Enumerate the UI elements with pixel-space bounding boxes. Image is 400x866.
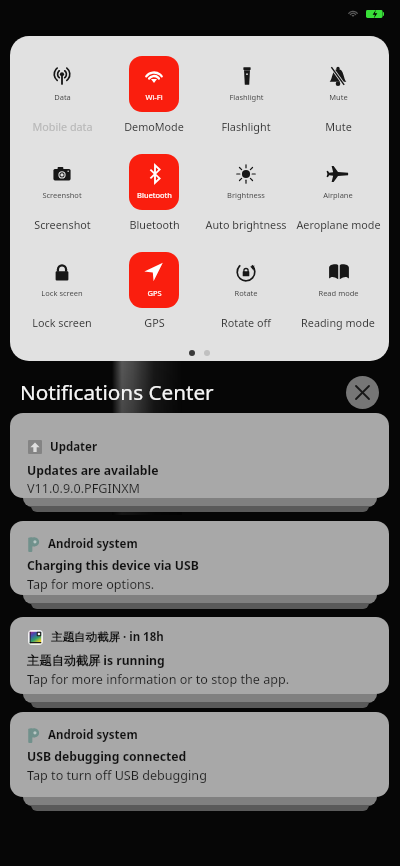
button[interactable]: Brightness xyxy=(200,154,292,232)
staticText: Android system xyxy=(48,536,138,552)
button[interactable]: Updater xyxy=(10,413,389,498)
staticText: Tap for more information or to stop the … xyxy=(27,671,290,688)
button[interactable]: Bluetooth xyxy=(108,154,200,232)
staticText: Auto brightness xyxy=(205,217,287,232)
staticText: GPS xyxy=(144,315,165,330)
staticText: Mute xyxy=(325,119,352,134)
staticText: Airplane xyxy=(323,190,353,200)
button[interactable]: Flashlight xyxy=(200,56,292,134)
staticText: Mobile data xyxy=(32,119,93,134)
staticText: Updater xyxy=(50,439,98,455)
staticText: Notifications Center xyxy=(20,378,214,406)
staticText: Rotate xyxy=(234,288,258,298)
button[interactable]: Airplane xyxy=(292,154,384,232)
button[interactable]: Rotate xyxy=(200,252,292,330)
staticText: Brightness xyxy=(227,190,265,200)
staticText: Charging this device via USB xyxy=(27,557,199,574)
staticText: Rotate off xyxy=(221,315,271,330)
button[interactable]: Android system xyxy=(10,521,389,595)
button[interactable]: Close notifications xyxy=(346,376,379,409)
staticText: Lock screen xyxy=(32,315,92,330)
staticText: Mute xyxy=(329,92,348,102)
staticText: Wi-Fi xyxy=(145,92,163,102)
staticText: GPS xyxy=(147,288,162,298)
staticText: Tap to turn off USB debugging xyxy=(27,767,207,784)
staticText: Bluetooth xyxy=(129,217,180,232)
button[interactable]: Wi-Fi xyxy=(108,56,200,134)
button[interactable]: Lock screen xyxy=(16,252,108,330)
staticText: 主题自动截屏 · in 18h xyxy=(51,629,164,645)
staticText: Flashlight xyxy=(229,92,264,102)
staticText: Aeroplane mode xyxy=(296,217,381,232)
button[interactable]: GPS xyxy=(108,252,200,330)
button[interactable]: 主题自动截屏 · in 18h xyxy=(10,617,389,694)
staticText: Lock screen xyxy=(41,288,83,298)
staticText: Android system xyxy=(48,727,138,743)
button[interactable]: Android system xyxy=(10,712,389,797)
staticText: Screenshot xyxy=(34,217,91,232)
button[interactable]: Data xyxy=(16,56,108,134)
button[interactable]: Read mode xyxy=(292,252,384,330)
staticText: Updates are available xyxy=(27,462,159,479)
staticText: Tap for more options. xyxy=(27,576,155,593)
staticText: DemoMode xyxy=(124,119,184,134)
staticText: Read mode xyxy=(318,288,359,298)
staticText: Data xyxy=(54,92,71,102)
button[interactable]: Screenshot xyxy=(16,154,108,232)
staticText: Reading mode xyxy=(301,315,375,330)
staticText: V11.0.9.0.PFGINXM xyxy=(27,480,141,497)
staticText: USB debugging connected xyxy=(27,748,187,765)
button[interactable]: Mute xyxy=(292,56,384,134)
staticText: 主题自动截屏 is running xyxy=(27,652,165,669)
staticText: Flashlight xyxy=(221,119,271,134)
staticText: Bluetooth xyxy=(137,190,172,200)
staticText: Screenshot xyxy=(42,190,82,200)
